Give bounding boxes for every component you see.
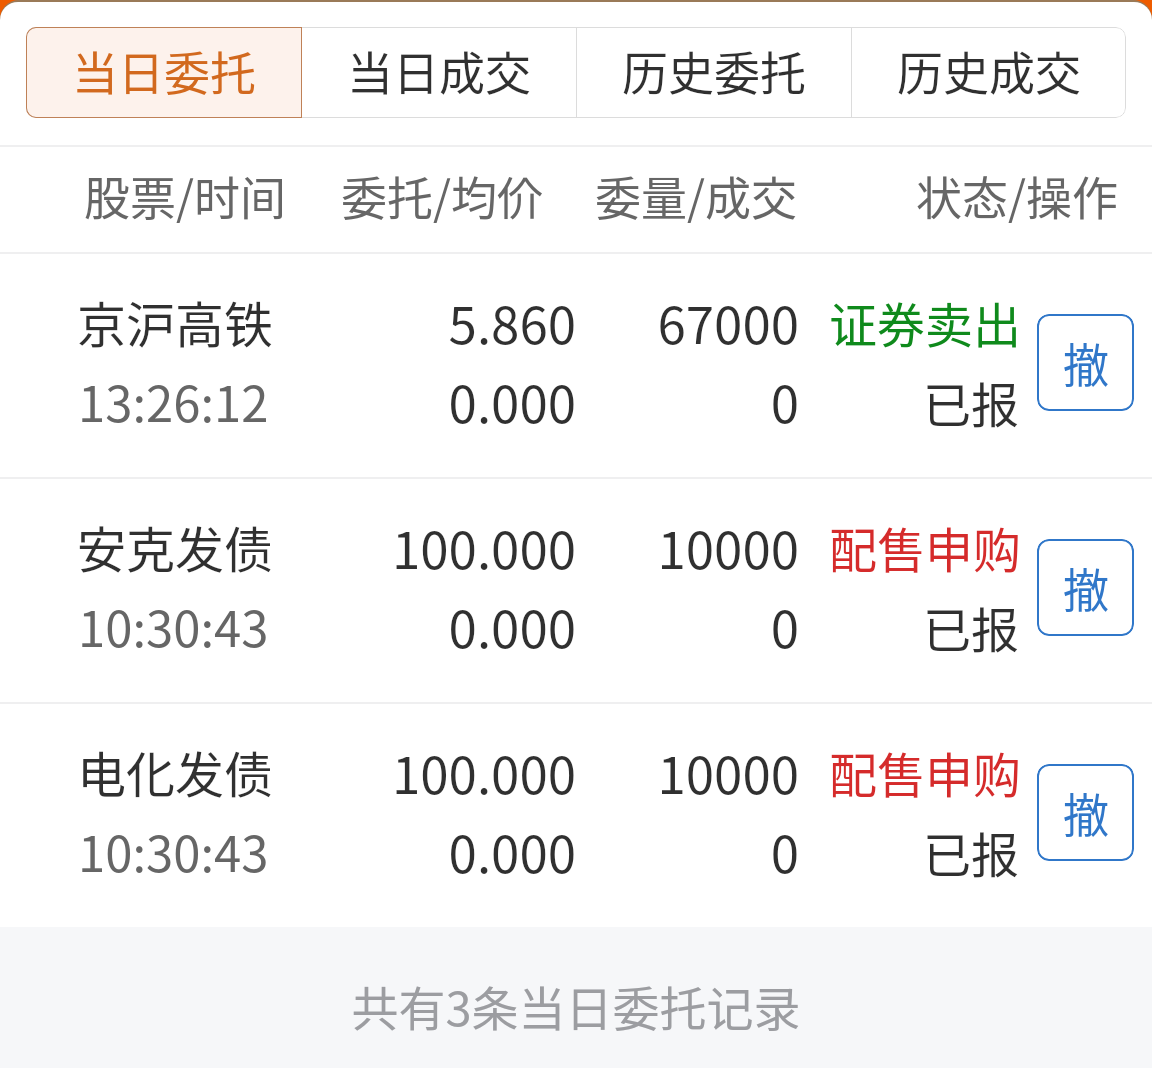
button[interactable]: 撤单	[1037, 764, 1134, 861]
button[interactable]: 历史成交	[852, 27, 1126, 118]
staticText: 10:30:43	[78, 590, 269, 661]
staticText: 京沪高铁	[77, 286, 274, 357]
staticText: 0.000	[76, 589, 576, 663]
staticText: 100.000	[76, 510, 576, 584]
staticText: 共有3条当日委托记录	[0, 971, 1152, 1039]
staticText: 状态/操作	[916, 162, 1119, 229]
staticText: 100.000	[76, 735, 576, 809]
staticText: 撤	[1063, 329, 1109, 396]
staticText: 10:30:43	[78, 815, 269, 886]
staticText: 0.000	[76, 814, 576, 888]
button[interactable]: 京沪高铁	[0, 252, 1152, 477]
button[interactable]: 当日委托	[26, 27, 301, 118]
staticText: 0	[299, 589, 799, 663]
staticText: 67000	[299, 285, 799, 359]
button[interactable]: 安克发债	[0, 477, 1152, 702]
button[interactable]: 电化发债	[0, 702, 1152, 927]
staticText: 已报	[519, 817, 1019, 887]
staticText: 当日委托	[72, 37, 256, 104]
staticText: 电化发债	[77, 736, 274, 807]
staticText: 0.000	[76, 364, 576, 438]
staticText: 历史委托	[622, 37, 806, 104]
button[interactable]: 撤单	[1037, 539, 1134, 636]
staticText: 委托/均价	[341, 162, 544, 229]
staticText: 0	[299, 364, 799, 438]
staticText: 历史成交	[897, 37, 1081, 104]
staticText: 配售申购	[521, 512, 1021, 582]
staticText: 配售申购	[521, 737, 1021, 807]
staticText: 股票/时间	[84, 162, 287, 229]
staticText: 5.860	[76, 285, 576, 359]
staticText: 已报	[519, 592, 1019, 662]
staticText: 已报	[519, 367, 1019, 437]
staticText: 0	[299, 814, 799, 888]
button[interactable]: 撤单	[1037, 314, 1134, 411]
staticText: 委量/成交	[595, 162, 798, 229]
staticText: 13:26:12	[78, 365, 269, 436]
staticText: 撤	[1063, 554, 1109, 621]
staticText: 10000	[299, 735, 799, 809]
staticText: 10000	[299, 510, 799, 584]
staticText: 证券卖出	[521, 287, 1021, 357]
button[interactable]: 历史委托	[577, 27, 851, 118]
staticText: 安克发债	[77, 511, 274, 582]
staticText: 当日成交	[347, 37, 531, 104]
button[interactable]: 当日成交	[302, 27, 576, 118]
staticText: 撤	[1063, 779, 1109, 846]
